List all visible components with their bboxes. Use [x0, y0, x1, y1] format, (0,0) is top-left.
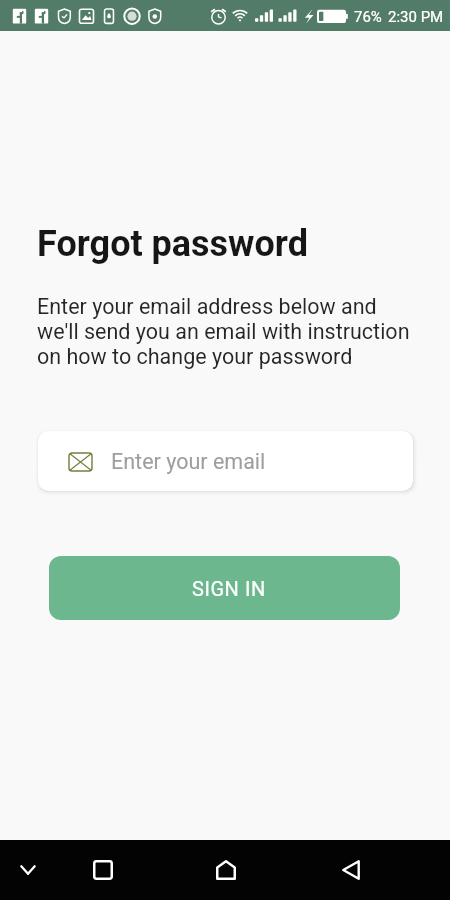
staticText: Enter your email address below and we'll… [37, 294, 410, 369]
button[interactable]: Home [202, 846, 250, 894]
button[interactable]: SIGN IN [49, 556, 400, 620]
staticText: Enter your email [111, 449, 266, 474]
button[interactable]: Enter your email [38, 431, 413, 491]
button[interactable]: Recent apps [79, 846, 127, 894]
staticText: 76% [354, 8, 382, 26]
button[interactable]: Hide keyboard [4, 846, 52, 894]
staticText: SIGN IN [192, 577, 266, 600]
staticText: Forgot password [37, 223, 308, 265]
button[interactable]: Back [327, 846, 375, 894]
staticText: 2:30 PM [388, 8, 444, 26]
